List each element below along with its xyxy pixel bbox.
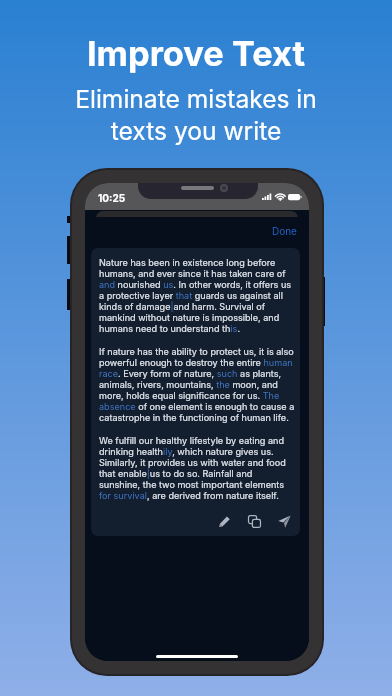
button[interactable]: Copy xyxy=(242,509,266,533)
staticText: Improve Text xyxy=(0,33,392,75)
button[interactable]: Send xyxy=(272,509,296,533)
staticText: Eliminate mistakes in texts you write xyxy=(0,84,392,146)
staticText: 10:25 xyxy=(98,192,126,204)
staticText: Nature has been in existence long before… xyxy=(99,257,295,334)
staticText: We fulfill our healthy lifestyle by eati… xyxy=(99,435,295,501)
staticText: If nature has the ability to protect us,… xyxy=(99,346,295,423)
button[interactable]: Edit xyxy=(212,509,236,533)
staticText: Done xyxy=(272,225,297,237)
button[interactable]: Done xyxy=(266,221,303,241)
